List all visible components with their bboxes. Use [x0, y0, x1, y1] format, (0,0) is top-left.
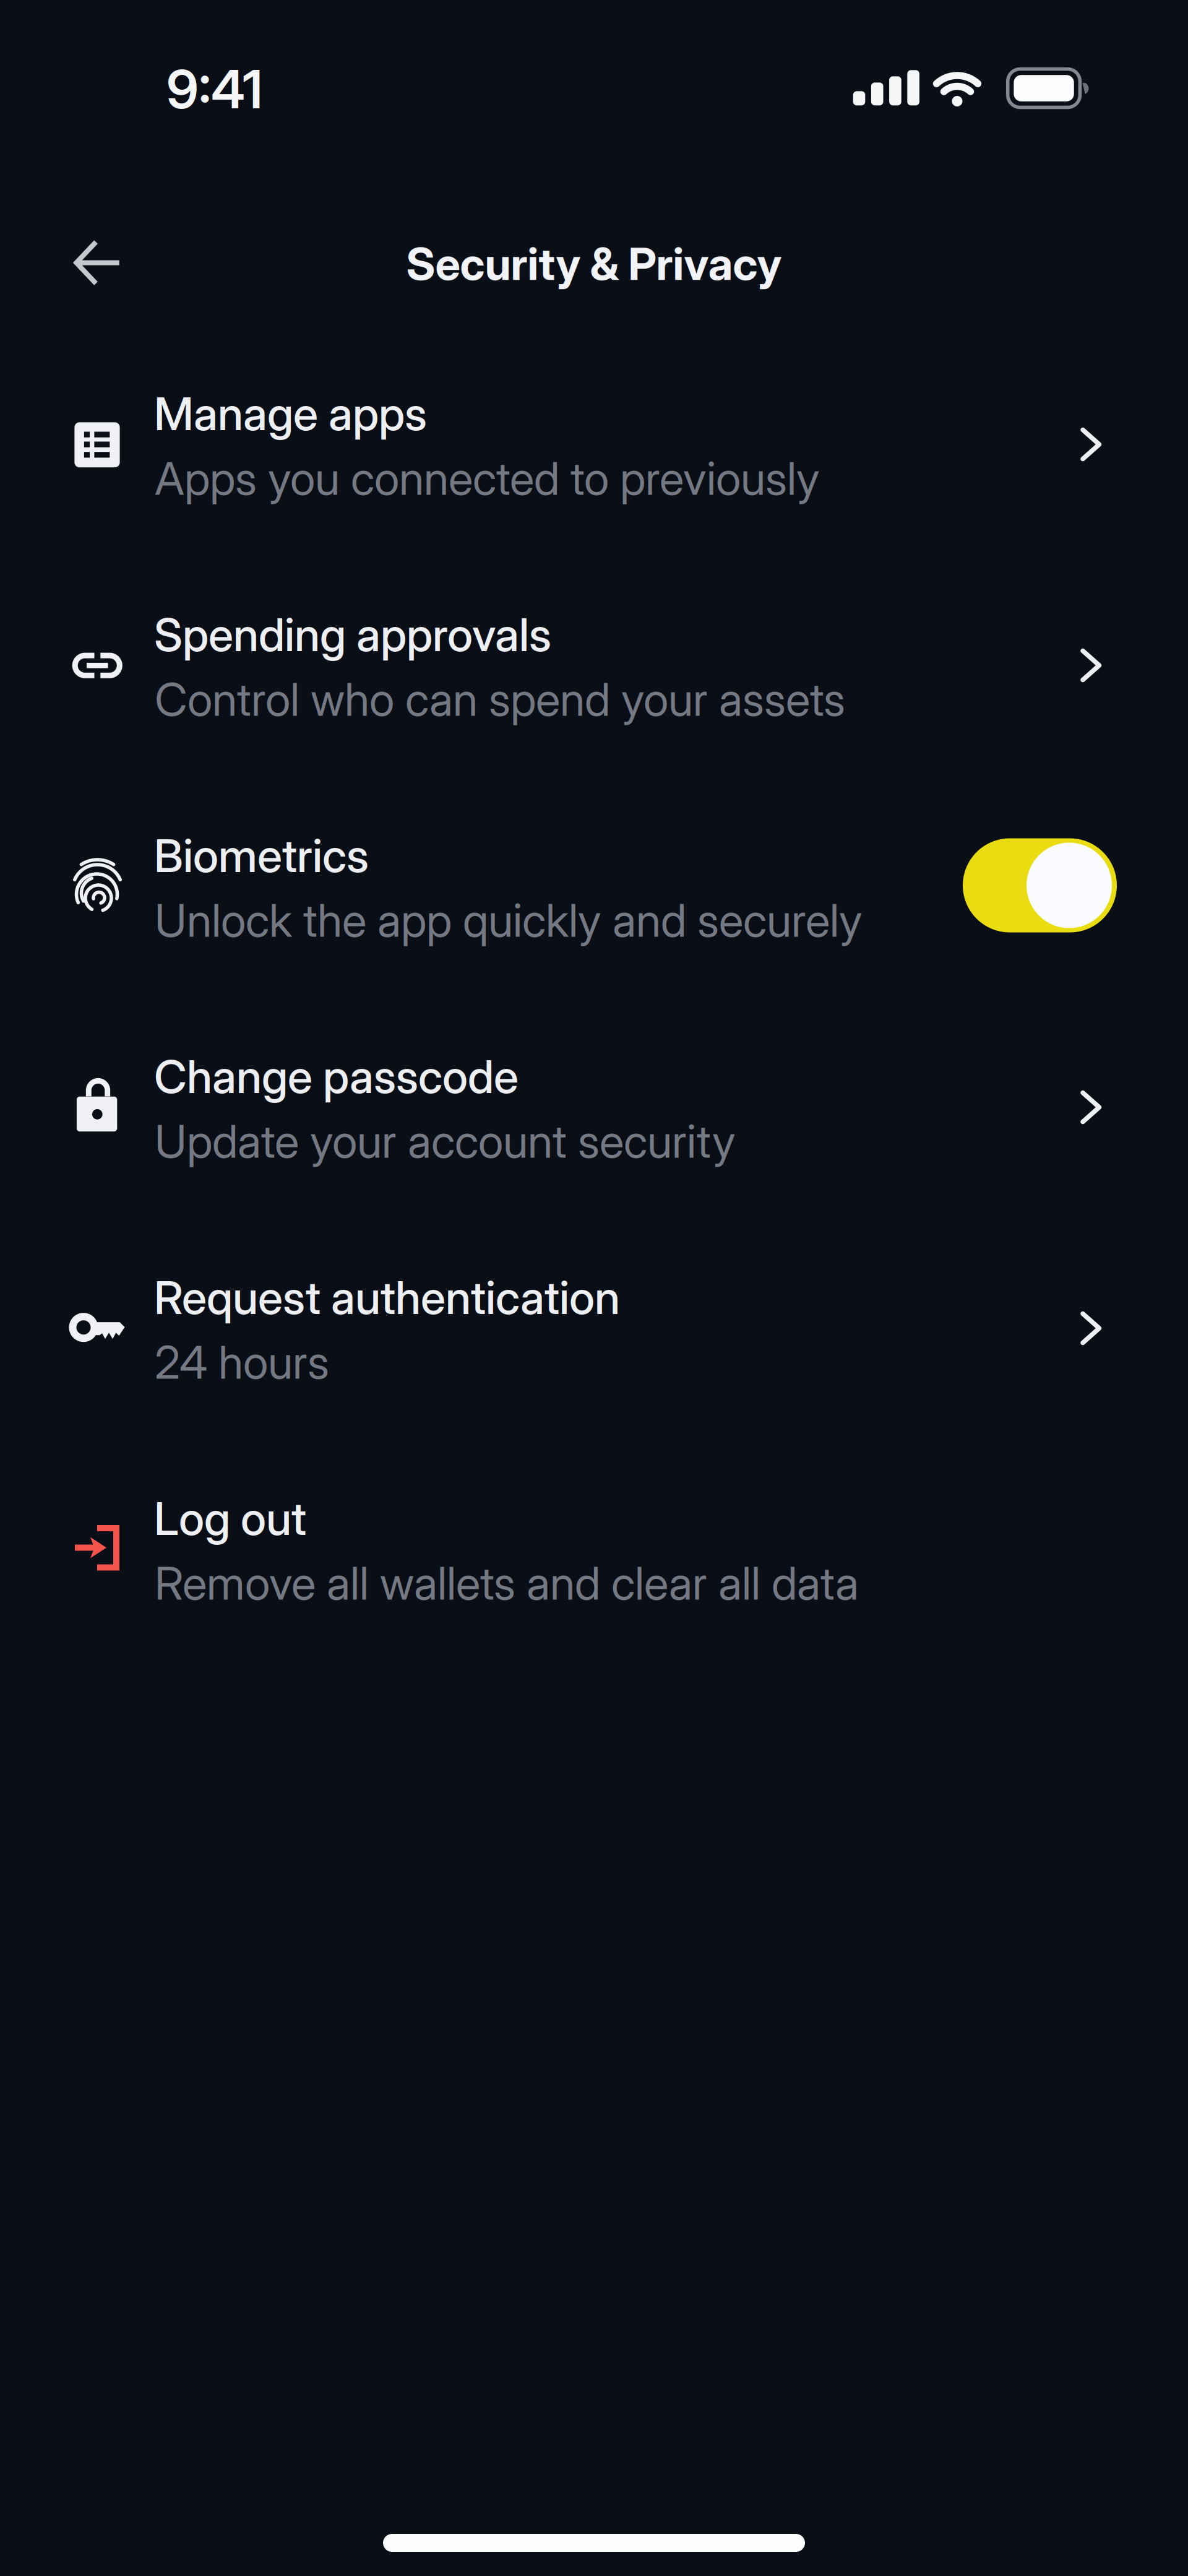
button[interactable]: Log out — [0, 1437, 1188, 1658]
button[interactable]: Biometrics — [0, 774, 1188, 995]
button[interactable]: Spending approvals — [0, 553, 1188, 774]
staticText: Biometrics — [154, 829, 369, 882]
staticText: Spending approvals — [154, 608, 551, 661]
staticText: Control who can spend your assets — [155, 672, 845, 726]
staticText: Unlock the app quickly and securely — [155, 893, 863, 947]
staticText: Log out — [154, 1492, 306, 1545]
staticText: 24 hours — [155, 1335, 329, 1389]
staticText: Change passcode — [154, 1050, 519, 1103]
staticText: Update your account security — [155, 1114, 736, 1168]
button[interactable] — [53, 220, 139, 306]
staticText: Remove all wallets and clear all data — [155, 1556, 859, 1610]
staticText: Request authentication — [154, 1271, 620, 1324]
button[interactable]: Request authentication — [0, 1216, 1188, 1437]
staticText: Manage apps — [154, 387, 427, 440]
staticText: 9:41 — [166, 58, 262, 120]
button[interactable]: Change passcode — [0, 995, 1188, 1216]
button[interactable]: Manage apps — [0, 332, 1188, 553]
staticText: Security & Privacy — [406, 237, 782, 290]
staticText: Apps you connected to previously — [155, 452, 820, 505]
